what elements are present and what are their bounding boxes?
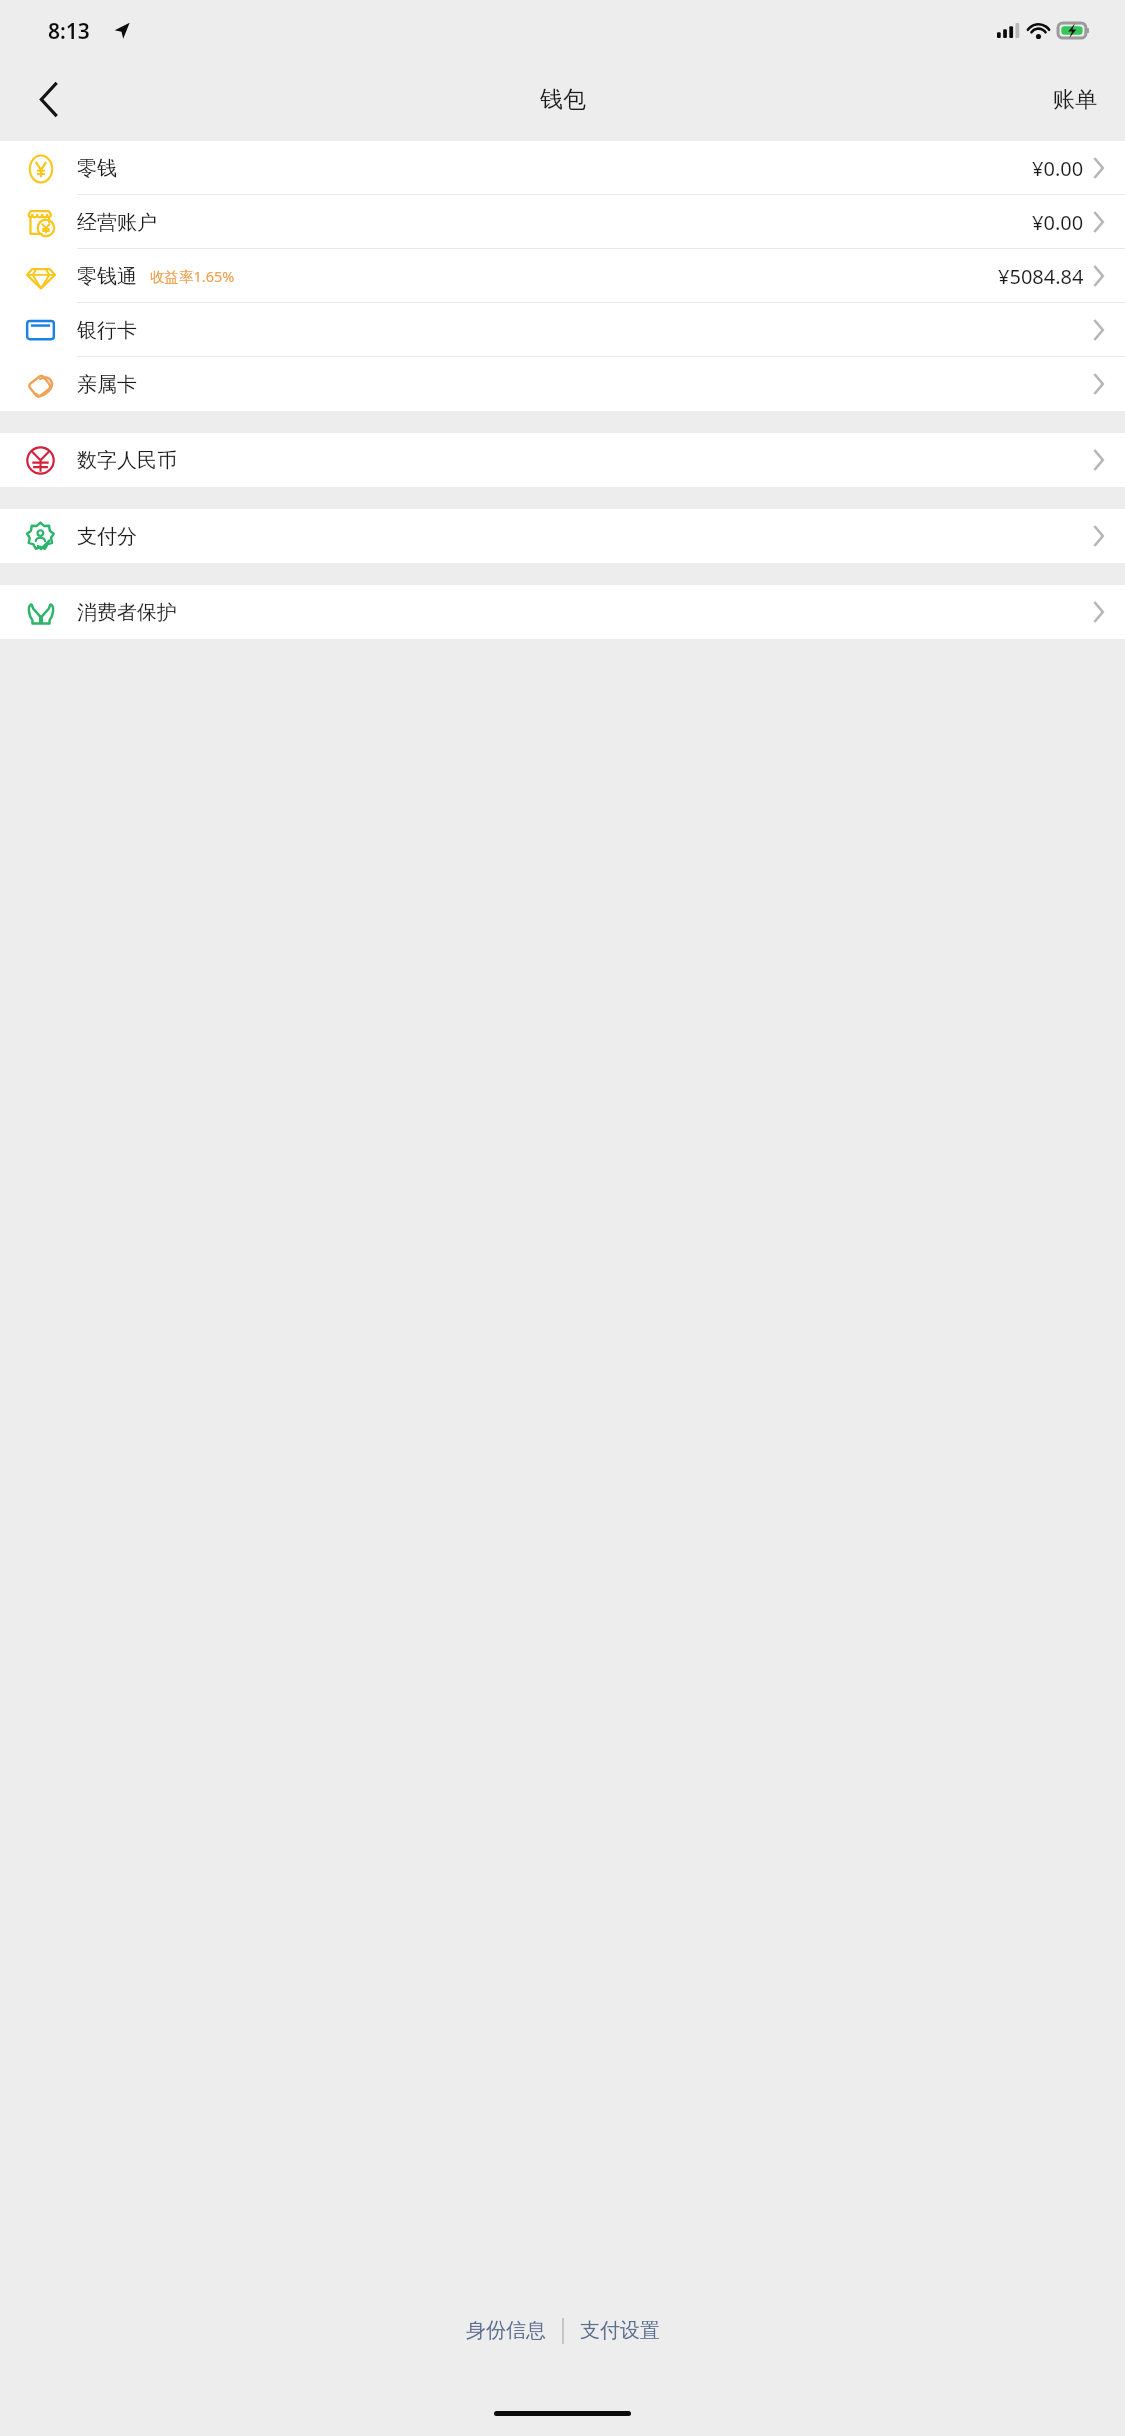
staticText: 收益率1.65% [150,266,235,286]
staticText: 亲属卡 [77,372,137,397]
button[interactable]: 零钱 [0,141,1125,195]
button[interactable]: 支付分 [0,509,1125,563]
staticText: 支付设置 [580,2318,660,2343]
staticText: 8:13 [48,17,90,46]
button[interactable]: 账单 [1025,58,1125,141]
button[interactable]: 零钱通 [0,249,1125,303]
staticText: ¥5084.84 [998,263,1084,290]
staticText: 经营账户 [77,210,157,235]
staticText: 身份信息 [466,2318,546,2343]
staticText: 银行卡 [77,318,137,343]
staticText: 支付分 [77,524,137,549]
button[interactable]: 数字人民币 [0,433,1125,487]
staticText: ¥0.00 [1032,209,1084,236]
button[interactable]: 亲属卡 [0,357,1125,411]
button[interactable]: 消费者保护 [0,585,1125,639]
staticText: 账单 [1053,86,1097,114]
button[interactable]: 身份信息 [450,2310,562,2351]
button[interactable]: 支付设置 [564,2310,676,2351]
staticText: 消费者保护 [77,600,177,625]
staticText: 零钱通 [77,264,137,289]
button[interactable]: Back [0,58,96,141]
staticText: 数字人民币 [77,448,177,473]
staticText: 钱包 [540,85,586,114]
button[interactable]: 银行卡 [0,303,1125,357]
staticText: 零钱 [77,156,117,181]
button[interactable]: 经营账户 [0,195,1125,249]
staticText: ¥0.00 [1032,155,1084,182]
